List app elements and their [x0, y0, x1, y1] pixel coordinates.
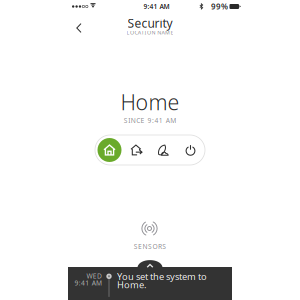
staticText: SINCE 9:41 AM — [124, 116, 176, 125]
staticText: 9:41 AM — [74, 279, 102, 287]
button[interactable]: Home mode — [96, 136, 123, 164]
staticText: 99% — [211, 1, 228, 12]
button[interactable]: Night mode — [150, 136, 177, 164]
button[interactable]: System off — [177, 136, 204, 164]
button[interactable]: Away mode — [123, 136, 150, 164]
staticText: You set the system to — [117, 270, 207, 283]
staticText: Home. — [117, 278, 147, 291]
staticText: Security — [127, 15, 172, 31]
staticText: SENSORS — [134, 242, 166, 251]
button[interactable]: Activity log — [68, 261, 232, 300]
staticText: 9:41 AM — [143, 2, 169, 11]
staticText: Home — [120, 88, 179, 116]
button[interactable]: Back — [68, 16, 90, 40]
staticText: LOCATION NAME — [127, 29, 173, 36]
staticText: WED — [86, 272, 102, 280]
